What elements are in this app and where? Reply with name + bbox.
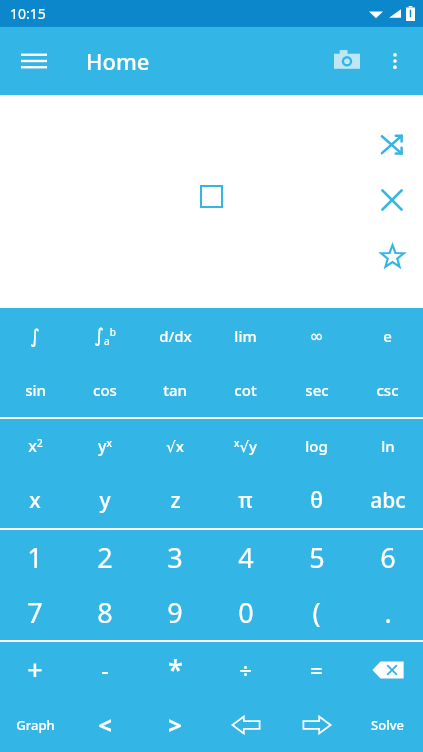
button[interactable]: 2 [70, 530, 140, 585]
button[interactable]: π [210, 473, 281, 528]
button[interactable]: e [352, 308, 423, 363]
staticText: + [27, 651, 43, 688]
button[interactable]: 9 [140, 585, 210, 640]
staticText: = [310, 655, 323, 685]
button[interactable]: d/dx [140, 308, 210, 363]
button[interactable]: cot [210, 363, 281, 417]
staticText: 8 [97, 594, 113, 631]
staticText: csc [376, 380, 399, 400]
button[interactable]: Solve [352, 697, 423, 752]
staticText: 6 [380, 539, 396, 576]
button[interactable]: log [281, 419, 352, 473]
button[interactable]: Move left [210, 697, 281, 752]
staticText: - [101, 655, 109, 685]
staticText: . [384, 594, 392, 631]
staticText: 4 [238, 539, 254, 576]
staticText: tan [163, 380, 187, 400]
button[interactable]: Graph [0, 697, 70, 752]
staticText: 7 [27, 594, 43, 631]
button[interactable]: 5 [281, 530, 352, 585]
staticText: cos [93, 380, 117, 400]
button[interactable]: z [140, 473, 210, 528]
staticText: 10:15 [10, 4, 46, 23]
staticText: cot [234, 380, 257, 400]
staticText: ∫ab [94, 324, 116, 348]
button[interactable]: Backspace [352, 642, 423, 697]
staticText: sec [305, 380, 329, 400]
staticText: √x [166, 436, 184, 456]
button[interactable]: . [352, 585, 423, 640]
button[interactable]: < [70, 697, 140, 752]
staticText: lim [234, 326, 257, 346]
button[interactable]: + [0, 642, 70, 697]
staticText: 3 [167, 539, 183, 576]
button[interactable]: tan [140, 363, 210, 417]
staticText: Graph [16, 716, 55, 734]
button[interactable]: abc [352, 473, 423, 528]
button[interactable]: 8 [70, 585, 140, 640]
button[interactable]: - [70, 642, 140, 697]
staticText: abc [370, 486, 406, 515]
button[interactable]: ÷ [210, 642, 281, 697]
staticText: x [29, 486, 41, 515]
button[interactable]: 1 [0, 530, 70, 585]
staticText: z [170, 486, 181, 515]
staticText: d/dx [159, 326, 192, 346]
staticText: * [168, 651, 183, 688]
button[interactable]: * [140, 642, 210, 697]
staticText: x2 [28, 435, 43, 457]
staticText: Solve [371, 716, 404, 734]
staticText: ln [381, 436, 395, 456]
button[interactable]: sin [0, 363, 70, 417]
staticText: > [168, 708, 182, 741]
staticText: θ [310, 486, 323, 515]
staticText: x√y [234, 436, 257, 456]
staticText: Home [86, 46, 150, 76]
staticText: ( [312, 594, 321, 631]
staticText: π [238, 486, 253, 515]
button[interactable]: Clear [369, 177, 415, 223]
button[interactable]: cos [70, 363, 140, 417]
button[interactable]: 0 [210, 585, 281, 640]
button[interactable]: x√y [210, 419, 281, 473]
button[interactable]: sec [281, 363, 352, 417]
button[interactable]: 6 [352, 530, 423, 585]
button[interactable]: ∫ab [70, 308, 140, 363]
button[interactable]: Favorite [369, 233, 415, 279]
button[interactable]: = [281, 642, 352, 697]
button[interactable]: > [140, 697, 210, 752]
button[interactable]: Move right [281, 697, 352, 752]
button[interactable]: x [0, 473, 70, 528]
button[interactable]: csc [352, 363, 423, 417]
staticText: log [305, 436, 328, 456]
staticText: 9 [167, 594, 183, 631]
staticText: sin [25, 380, 46, 400]
staticText: 2 [97, 539, 113, 576]
button[interactable]: 7 [0, 585, 70, 640]
staticText: ∫ [30, 325, 40, 347]
button[interactable]: √x [140, 419, 210, 473]
staticText: yx [98, 435, 112, 457]
staticText: ÷ [239, 655, 252, 685]
button[interactable]: Menu [12, 39, 56, 83]
button[interactable]: lim [210, 308, 281, 363]
button[interactable]: y [70, 473, 140, 528]
staticText: y [99, 486, 111, 515]
button[interactable]: 3 [140, 530, 210, 585]
staticText: 1 [27, 539, 43, 576]
button[interactable]: Shuffle [369, 121, 415, 167]
button[interactable]: yx [70, 419, 140, 473]
staticText: < [98, 708, 112, 741]
button[interactable]: Camera [323, 37, 371, 85]
staticText: ∞ [309, 326, 324, 346]
button[interactable]: ∞ [281, 308, 352, 363]
button[interactable]: More options [371, 37, 419, 85]
button[interactable]: ln [352, 419, 423, 473]
staticText: 5 [309, 539, 325, 576]
button[interactable]: 4 [210, 530, 281, 585]
button[interactable]: θ [281, 473, 352, 528]
button[interactable]: ∫ [0, 308, 70, 363]
staticText: 0 [238, 594, 254, 631]
button[interactable]: ( [281, 585, 352, 640]
button[interactable]: x2 [0, 419, 70, 473]
